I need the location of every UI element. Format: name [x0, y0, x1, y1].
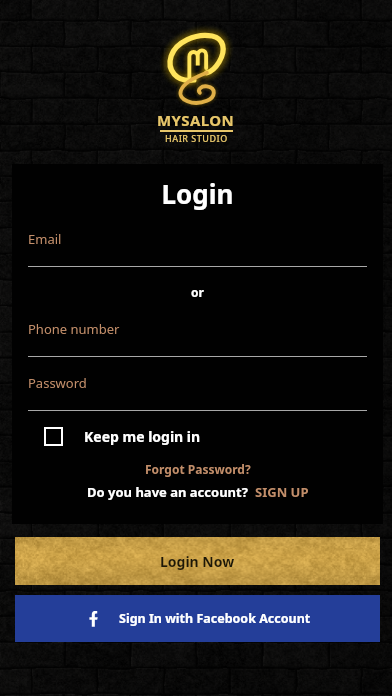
staticText: Login Now	[160, 552, 235, 571]
staticText: or	[28, 284, 367, 300]
staticText: Password	[28, 374, 87, 392]
staticText: Login	[28, 176, 367, 211]
button[interactable]: Login Now	[15, 537, 380, 585]
staticText: MYSALON	[157, 110, 235, 130]
button[interactable]: Forgot Password?	[145, 461, 251, 477]
staticText: Phone number	[28, 320, 120, 338]
staticText: Sign In with Facebook Account	[119, 610, 311, 627]
staticText: HAIR STUDIO	[165, 132, 228, 144]
staticText: Email	[28, 230, 62, 248]
button[interactable]: Sign In with Facebook Account	[15, 595, 380, 642]
staticText: Keep me login in	[84, 427, 201, 446]
other: Keep me login in	[44, 427, 63, 446]
button[interactable]: Keep me login in	[44, 427, 201, 446]
staticText: Do you have an account?	[87, 483, 248, 501]
button[interactable]: SIGN UP	[255, 483, 309, 501]
